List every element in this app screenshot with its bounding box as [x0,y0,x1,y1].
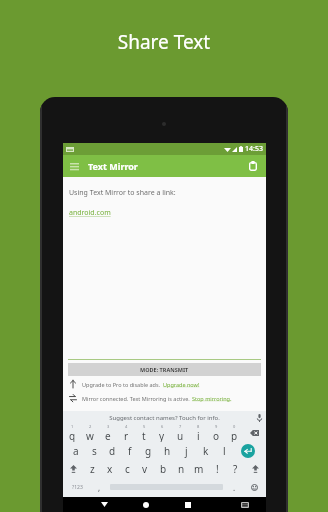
button[interactable]: Enter [234,442,262,460]
staticText: 7 [179,424,182,429]
staticText: j [185,444,188,458]
staticText: , [98,482,101,493]
button[interactable]: l [215,442,234,460]
staticText: q [69,429,76,442]
staticText: . [233,482,236,493]
staticText: b [160,462,167,476]
staticText: u [177,429,184,442]
staticText: i [197,429,200,442]
button[interactable]: c [118,460,136,478]
button[interactable]: Shift [244,460,266,478]
staticText: e [105,429,111,442]
button[interactable]: a [67,442,85,460]
button[interactable]: z [84,460,101,478]
button[interactable]: Backspace [243,424,266,442]
staticText: Suggest contact names? Touch for info. [76,414,253,422]
staticText: 5 [143,424,146,429]
staticText: Stop mirroring. [192,395,232,402]
staticText: n [178,462,185,476]
staticText: 8 [197,424,200,429]
button[interactable]: 2 [81,424,99,442]
staticText: c [125,462,130,476]
staticText: t [142,429,146,442]
button[interactable]: ? [226,460,244,478]
button[interactable]: . [226,478,242,496]
button[interactable]: h [158,442,177,460]
button[interactable]: ! [208,460,226,478]
button[interactable]: Recent apps [175,497,201,512]
staticText: 4 [125,424,128,429]
staticText: f [128,444,132,458]
button[interactable]: m [190,460,208,478]
button[interactable]: s [85,442,103,460]
staticText: Upgrade now! [163,381,200,388]
staticText: 1 [71,424,74,429]
button[interactable]: Shift [63,460,84,478]
button[interactable]: ?123 [63,478,91,496]
staticText: 14:53 [245,144,263,154]
staticText: a [73,444,79,458]
staticText: Mirror connected. Text Mirroring is acti… [82,395,190,402]
button[interactable]: Mirror connected. Text Mirroring is acti… [69,394,260,402]
button[interactable]: Upgrade to Pro to disable ads. [69,380,260,388]
button[interactable]: 4 [117,424,135,442]
button[interactable]: 5 [135,424,153,442]
button[interactable]: d [103,442,121,460]
button[interactable]: MODE: TRANSMIT [68,363,261,376]
staticText: Text Mirror [88,160,138,172]
staticText: 2 [89,424,92,429]
button[interactable]: , [91,478,107,496]
button[interactable]: f [121,442,139,460]
button[interactable]: Suggest contact names? Touch for info. [63,411,266,424]
button[interactable]: android.com [69,208,111,218]
staticText: 0 [233,424,236,429]
staticText: r [124,429,129,442]
staticText: Using Text Mirror to share a link: [69,188,176,198]
button[interactable]: Open navigation drawer [63,155,85,177]
button[interactable]: v [136,460,154,478]
button[interactable]: Clipboard [242,155,264,177]
staticText: 6 [161,424,164,429]
button[interactable]: Emoji [242,478,266,496]
staticText: y [159,429,165,442]
staticText: k [203,444,209,458]
button[interactable]: 8 [189,424,207,442]
button[interactable]: 3 [99,424,117,442]
button[interactable]: 6 [153,424,171,442]
staticText: w [86,429,94,442]
button[interactable]: j [177,442,196,460]
staticText: Share Text [0,29,328,55]
staticText: Upgrade to Pro to disable ads. [82,381,161,388]
staticText: l [223,444,226,458]
button[interactable]: g [139,442,158,460]
staticText: 3 [107,424,110,429]
button[interactable]: Voice input [253,411,266,424]
staticText: s [92,444,97,458]
button[interactable]: Switch keyboard [232,497,258,512]
button[interactable]: Space [107,478,226,496]
button[interactable]: 9 [207,424,225,442]
staticText: ? [233,462,238,476]
staticText: MODE: TRANSMIT [140,366,189,373]
staticText: o [213,429,220,442]
button[interactable]: 1 [63,424,81,442]
staticText: p [231,429,238,442]
button[interactable]: b [154,460,172,478]
button[interactable]: n [172,460,190,478]
staticText: h [164,444,171,458]
staticText: x [107,462,113,476]
staticText: z [90,462,95,476]
button[interactable]: k [196,442,215,460]
button[interactable]: x [101,460,118,478]
staticText: m [194,462,204,476]
staticText: ?123 [72,484,83,491]
button[interactable]: Home [133,497,159,512]
staticText: v [142,462,148,476]
staticText: d [109,444,116,458]
staticText: ! [216,462,219,476]
button[interactable]: Back [91,497,117,512]
button[interactable]: 7 [171,424,189,442]
staticText: g [145,444,152,458]
staticText: 9 [215,424,218,429]
button[interactable]: 0 [225,424,243,442]
